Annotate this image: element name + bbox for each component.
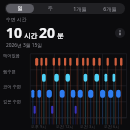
staticText: 오전 3시 [80,124,96,129]
staticText: 시간 [24,32,37,40]
staticText: 렘수면 [3,69,16,74]
staticText: 주 [47,5,53,12]
button[interactable]: 1개월 [66,4,94,13]
staticText: 1개월 [73,5,87,12]
staticText: 10 [6,23,23,42]
staticText: 오전 6시 [104,124,120,129]
staticText: 2026년 3월 15일 [6,42,43,49]
staticText: 코어 수면 [3,84,21,90]
staticText: 일 [17,5,23,12]
staticText: 깨어있음 [3,53,20,58]
staticText: 수면 시간 [6,16,27,23]
staticText: 6개월 [103,5,117,12]
button[interactable]: 주 [36,4,64,13]
button[interactable]: 6개월 [96,4,124,13]
staticText: 오후 9시 [31,124,47,129]
staticText: 20 [39,23,56,42]
button[interactable]: 일 [6,4,34,13]
button[interactable]: 정보 [115,28,125,38]
staticText: 분 [57,32,64,40]
staticText: 오전 12시 [56,124,74,129]
staticText: 깊은 수면 [3,99,21,105]
